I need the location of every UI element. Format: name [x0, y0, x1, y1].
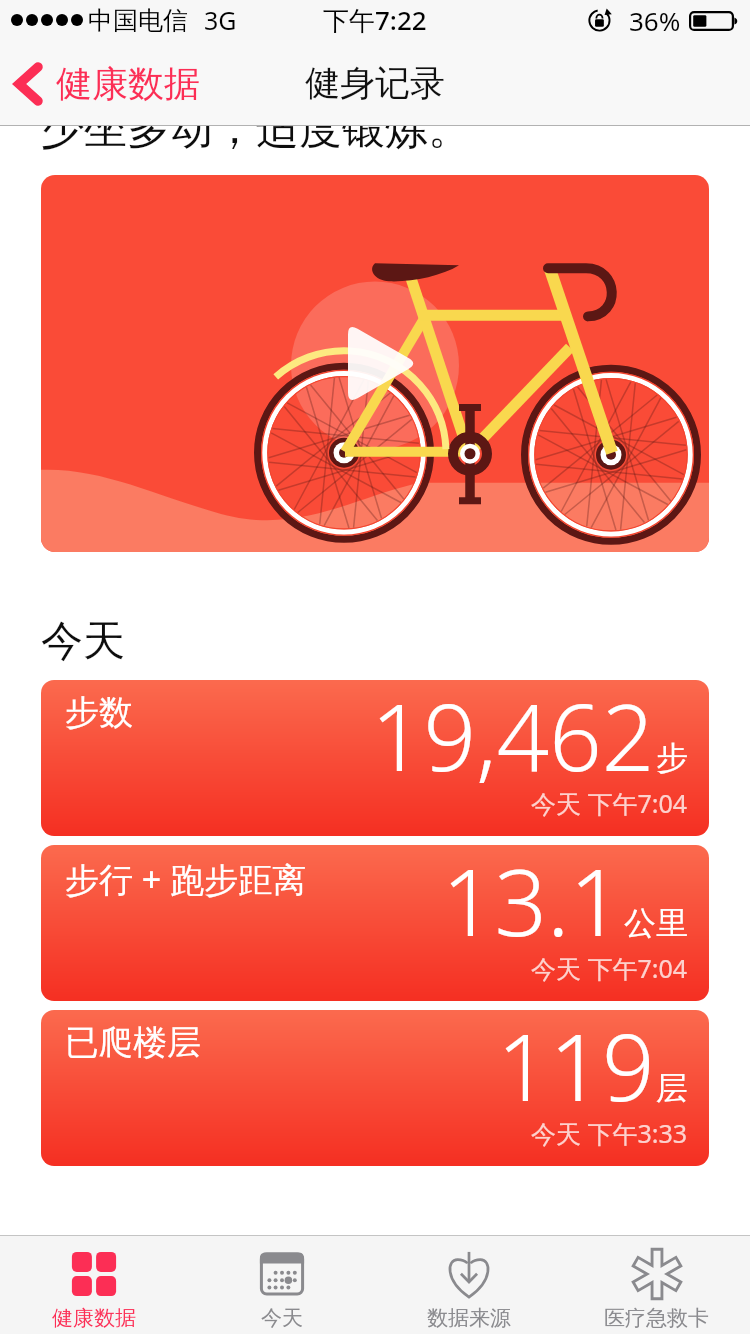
staticText: 今天: [41, 615, 125, 668]
staticText: 19,462: [371, 680, 655, 798]
staticText: 步: [656, 738, 688, 778]
staticText: 中国电信: [88, 5, 188, 36]
staticText: 医疗急救卡: [604, 1305, 709, 1331]
staticText: 今天: [261, 1305, 303, 1331]
button[interactable]: 步数: [41, 680, 709, 836]
other: Rotation lock: [588, 9, 614, 32]
staticText: 健康数据: [52, 1305, 136, 1331]
staticText: 步数: [65, 691, 133, 734]
staticText: 今天 下午7:04: [531, 786, 688, 820]
staticText: 健康数据: [56, 61, 200, 106]
staticText: 数据来源: [427, 1305, 511, 1331]
button[interactable]: 已爬楼层: [41, 1010, 709, 1166]
button[interactable]: 数据来源: [375, 1236, 562, 1334]
staticText: 13.1: [442, 845, 623, 963]
button[interactable]: 医疗急救卡: [563, 1236, 750, 1334]
staticText: 步行 + 跑步距离: [65, 856, 307, 902]
staticText: 少坐多动，适度锻炼。: [41, 102, 471, 156]
staticText: 红色区域记录的数据: [41, 1230, 419, 1283]
staticText: 119: [497, 1010, 655, 1128]
staticText: 已爬楼层: [65, 1021, 201, 1064]
button[interactable]: 步行 + 跑步距离: [41, 845, 709, 1001]
staticText: 今天 下午7:04: [531, 951, 688, 985]
button[interactable]: 健康数据: [0, 55, 210, 112]
staticText: 今天 下午3:33: [531, 1116, 688, 1150]
staticText: 下午7:22: [323, 2, 427, 38]
staticText: 3G: [204, 3, 237, 37]
button[interactable]: Play workout video: [41, 175, 709, 552]
staticText: 层: [656, 1068, 688, 1108]
button[interactable]: 健康数据: [0, 1236, 187, 1334]
staticText: 健身记录: [305, 61, 445, 105]
staticText: 36%: [629, 3, 681, 38]
button[interactable]: 今天: [188, 1236, 375, 1334]
staticText: 公里: [624, 903, 688, 943]
